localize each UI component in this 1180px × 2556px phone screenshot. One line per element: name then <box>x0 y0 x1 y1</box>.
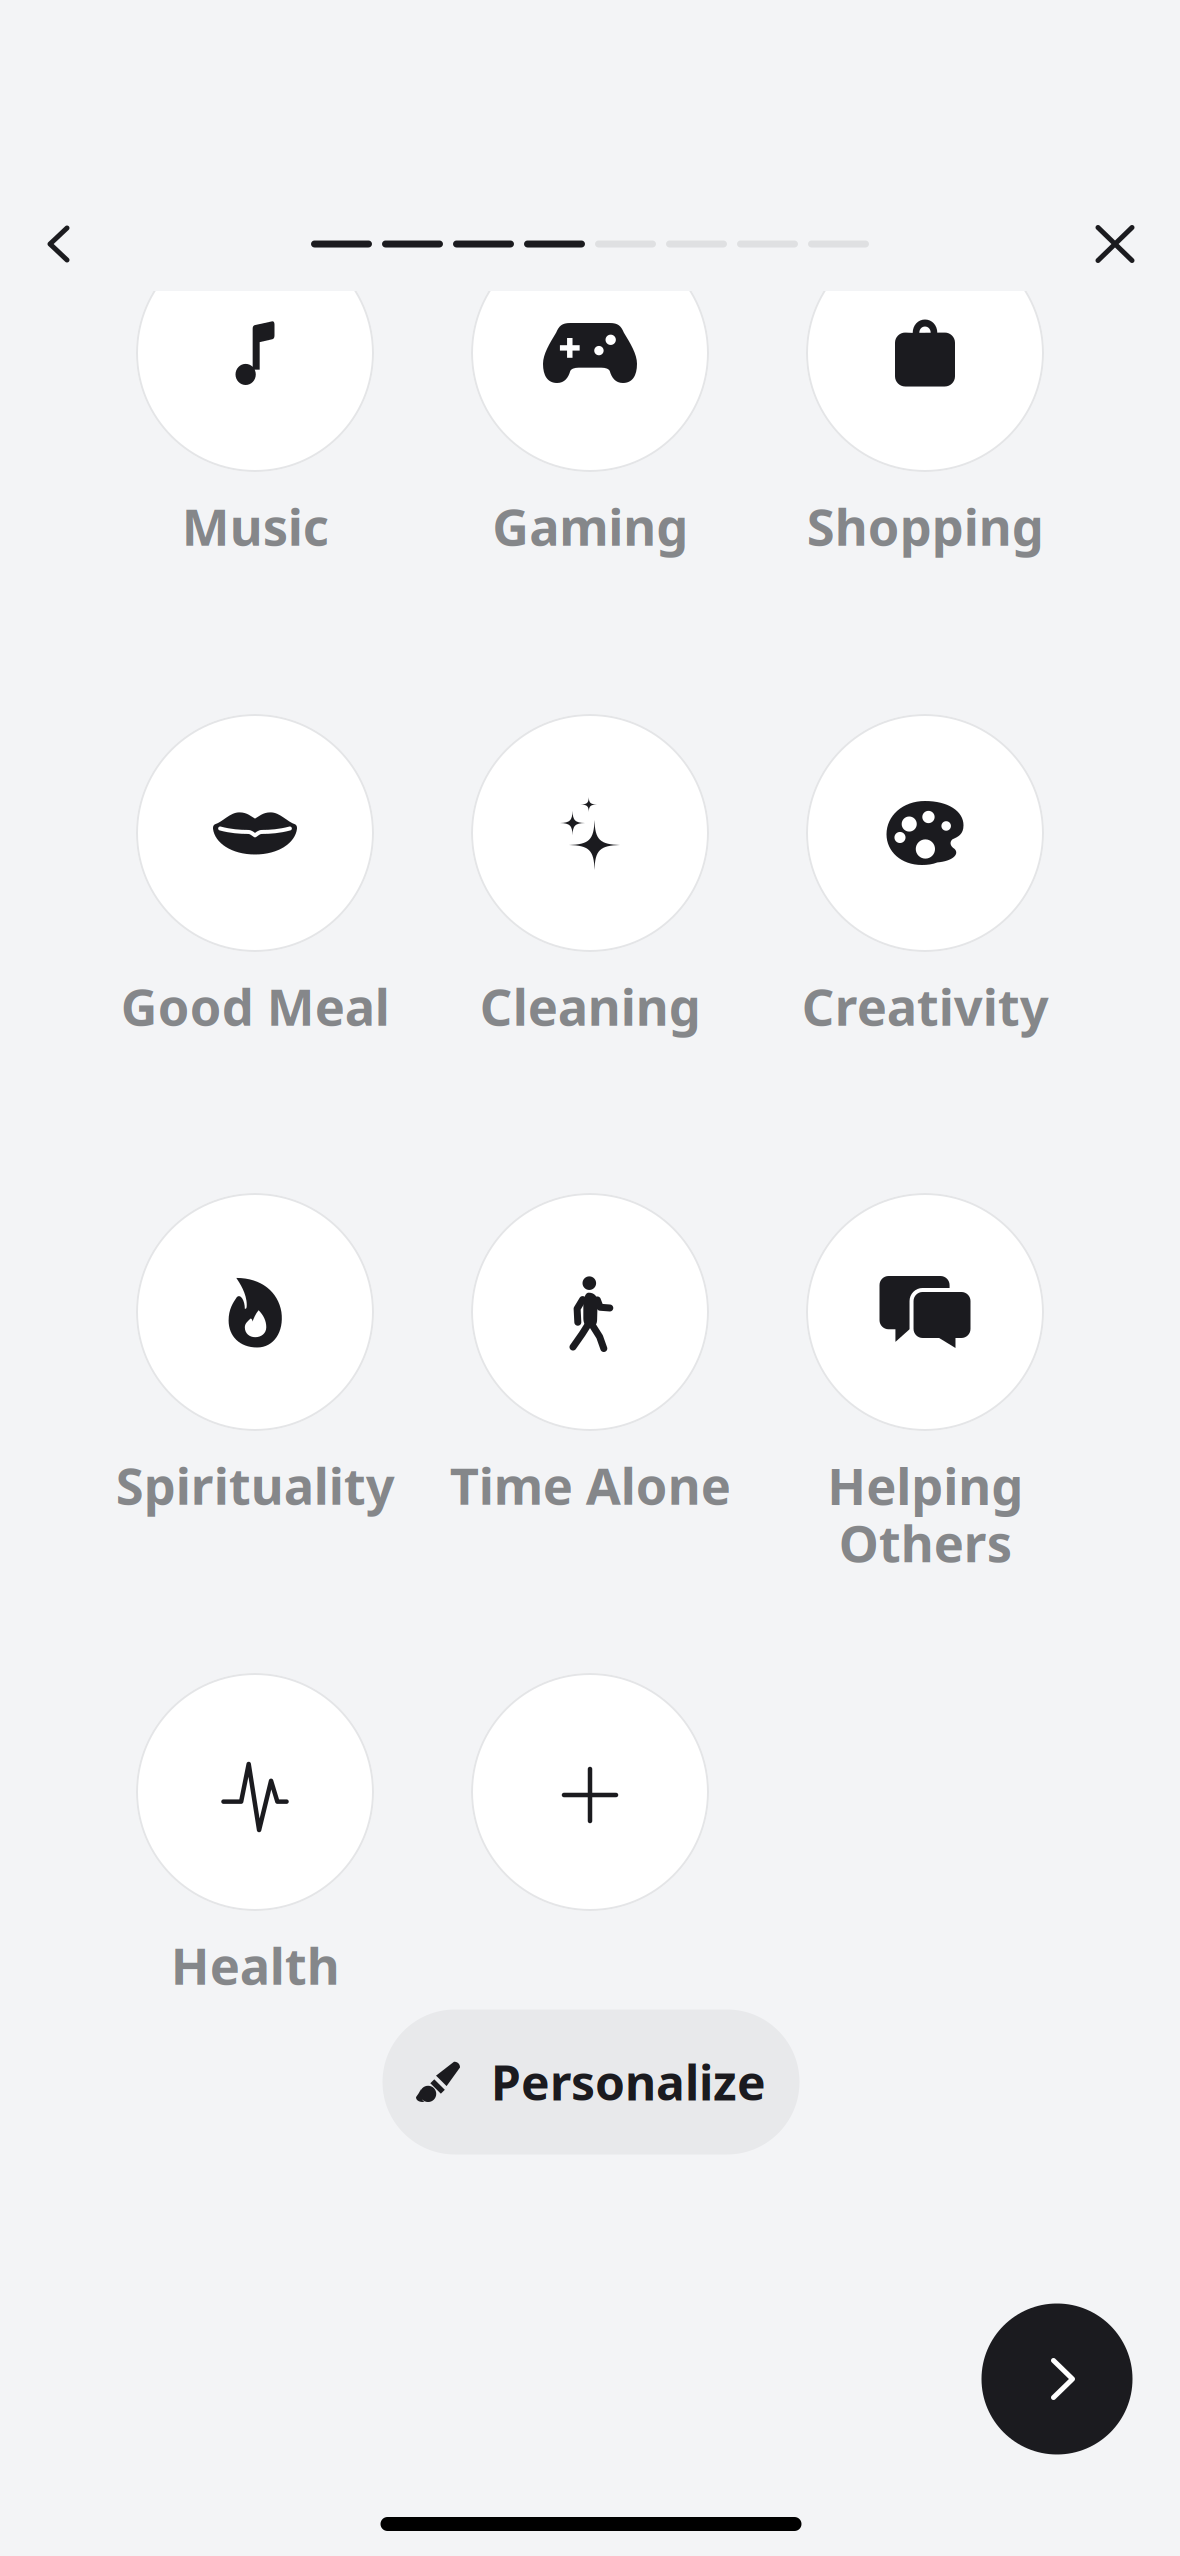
staticText: Personalize <box>491 2050 766 2114</box>
staticText: Spirituality <box>115 1451 394 1519</box>
staticText: Cleaning <box>479 972 700 1040</box>
button[interactable]: Spirituality <box>87 1193 422 1519</box>
staticText: Music <box>181 492 328 560</box>
staticText: Helping Others <box>827 1452 1023 1576</box>
staticText: Health <box>170 1931 339 1999</box>
button[interactable]: Shopping <box>757 234 1092 560</box>
staticText: Good Meal <box>120 972 389 1040</box>
button[interactable]: Close <box>1066 195 1180 292</box>
button[interactable]: Good Meal <box>87 714 422 1040</box>
button[interactable]: Health <box>87 1673 422 1999</box>
button[interactable]: Add <box>471 1673 709 1911</box>
staticText: Shopping <box>806 492 1043 560</box>
button[interactable]: Music <box>87 234 422 560</box>
staticText: Time Alone <box>449 1451 730 1519</box>
button[interactable]: Helping Others <box>757 1193 1092 1577</box>
staticText: Gaming <box>492 492 688 560</box>
button[interactable]: Time Alone <box>422 1193 757 1519</box>
button[interactable]: Creativity <box>757 714 1092 1040</box>
button[interactable]: Cleaning <box>422 714 757 1040</box>
staticText: Creativity <box>801 972 1048 1040</box>
button[interactable]: Gaming <box>422 234 757 560</box>
button[interactable]: Personalize <box>382 2009 799 2154</box>
button[interactable]: Next <box>981 2303 1132 2454</box>
button[interactable]: Back <box>0 194 101 294</box>
